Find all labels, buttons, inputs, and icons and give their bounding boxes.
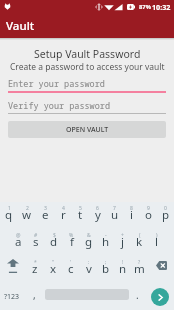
staticText: -: [105, 232, 107, 239]
staticText: q: [5, 207, 13, 223]
staticText: 7: [113, 205, 116, 212]
staticText: 6: [96, 205, 99, 212]
button[interactable]: #: [27, 229, 45, 256]
staticText: v: [86, 261, 92, 277]
staticText: t: [78, 207, 83, 223]
button[interactable]: %: [63, 229, 80, 256]
staticText: y: [95, 207, 101, 223]
staticText: @: [16, 232, 21, 239]
staticText: ,: [33, 288, 36, 302]
staticText: r: [61, 207, 66, 223]
staticText: ): [156, 232, 158, 239]
staticText: Setup Vault Password: [34, 47, 141, 61]
button[interactable]: 0: [157, 202, 174, 229]
staticText: b: [102, 261, 110, 277]
staticText: k: [136, 234, 143, 250]
button[interactable]: ;: [97, 256, 114, 283]
staticText: a: [15, 234, 22, 250]
staticText: 9: [147, 205, 150, 212]
staticText: Create a password to access your vault: [10, 61, 165, 73]
button[interactable]: :: [80, 256, 97, 283]
button[interactable]: -: [97, 229, 114, 256]
staticText: 87%: [139, 3, 151, 11]
staticText: l: [155, 234, 158, 250]
staticText: 0: [164, 205, 167, 212]
button[interactable]: +: [114, 229, 131, 256]
staticText: c: [68, 261, 74, 277]
button[interactable]: Period: [129, 283, 146, 310]
button[interactable]: @: [9, 229, 27, 256]
staticText: f: [70, 234, 74, 250]
staticText: h: [102, 234, 110, 250]
button[interactable]: Enter: [151, 288, 169, 306]
staticText: z: [32, 261, 38, 277]
staticText: ?123: [4, 292, 20, 302]
button[interactable]: 1: [0, 202, 18, 229]
button[interactable]: OPEN VAULT: [8, 121, 166, 138]
staticText: m: [134, 261, 145, 277]
staticText: j: [121, 234, 124, 250]
button[interactable]: &: [80, 229, 97, 256]
staticText: $: [53, 232, 56, 239]
staticText: !: [122, 259, 124, 266]
staticText: o: [145, 207, 152, 223]
button[interactable]: ?: [131, 256, 148, 283]
staticText: s: [33, 234, 39, 250]
staticText: +: [121, 232, 124, 239]
staticText: 4: [62, 205, 65, 212]
button[interactable]: 7: [106, 202, 123, 229]
button[interactable]: Backspace: [148, 256, 174, 283]
staticText: ?: [138, 259, 141, 266]
button[interactable]: $: [45, 229, 63, 256]
staticText: g: [85, 234, 93, 250]
staticText: &: [87, 232, 91, 239]
staticText: Enter your password: [8, 78, 105, 90]
staticText: 1: [8, 205, 11, 212]
button[interactable]: ': [62, 256, 80, 283]
staticText: w: [22, 207, 32, 223]
button[interactable]: Comma: [24, 283, 45, 310]
button[interactable]: 5: [72, 202, 89, 229]
button[interactable]: 8: [123, 202, 140, 229]
button[interactable]: *: [26, 256, 44, 283]
button[interactable]: 3: [36, 202, 54, 229]
button[interactable]: !: [114, 256, 131, 283]
button[interactable]: ?123: [0, 283, 24, 310]
staticText: 8: [130, 205, 133, 212]
staticText: Vault: [6, 18, 35, 34]
staticText: ;: [105, 259, 107, 266]
staticText: %: [69, 232, 74, 239]
staticText: ': [70, 259, 72, 266]
staticText: *: [34, 259, 37, 266]
staticText: #: [34, 232, 38, 239]
staticText: x: [50, 261, 57, 277]
button[interactable]: 2: [18, 202, 36, 229]
staticText: .: [136, 288, 139, 302]
staticText: n: [119, 261, 127, 277]
staticText: 5: [79, 205, 82, 212]
button[interactable]: ): [148, 229, 165, 256]
staticText: 10:32: [152, 2, 171, 12]
staticText: d: [50, 234, 58, 250]
staticText: u: [111, 207, 119, 223]
staticText: ": [52, 259, 55, 266]
staticText: OPEN VAULT: [66, 125, 109, 135]
staticText: e: [42, 207, 49, 223]
button[interactable]: 6: [89, 202, 106, 229]
staticText: 3: [44, 205, 47, 212]
staticText: :: [88, 259, 90, 266]
staticText: Verify your password: [8, 100, 111, 112]
staticText: i: [130, 207, 133, 223]
button[interactable]: 4: [54, 202, 72, 229]
button[interactable]: (: [131, 229, 148, 256]
staticText: p: [162, 207, 170, 223]
button[interactable]: ": [44, 256, 62, 283]
staticText: 2: [26, 205, 29, 212]
staticText: (: [139, 232, 141, 239]
button[interactable]: 9: [140, 202, 157, 229]
button[interactable]: Shift: [0, 256, 26, 283]
